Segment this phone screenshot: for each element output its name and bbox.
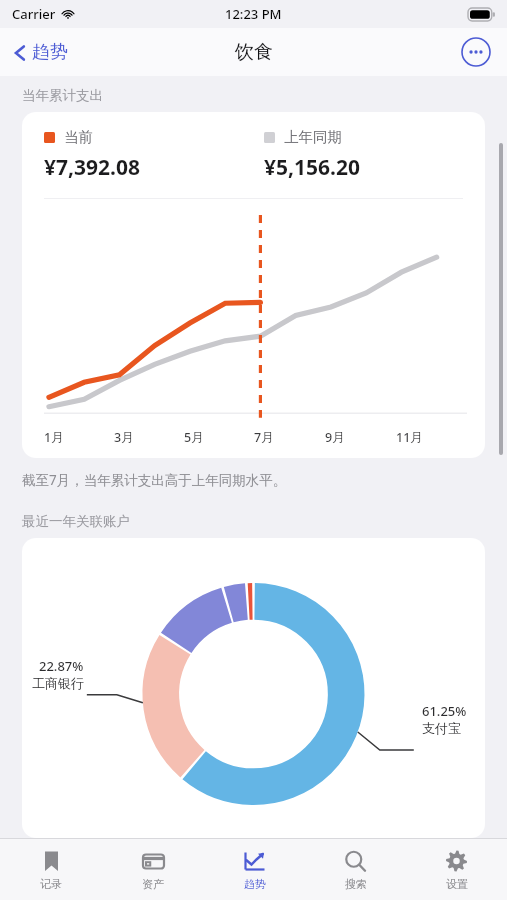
button[interactable]: 趋势 [10,37,72,68]
staticText: 当前 [64,128,93,146]
staticText: Carrier [12,5,56,23]
staticText: ¥7,392.08 [44,153,140,182]
staticText: 趋势 [244,877,266,891]
staticText: ¥5,156.20 [264,153,360,182]
staticText: 5月 [184,429,204,446]
staticText: 最近一年关联账户 [22,513,130,530]
staticText: 当年累计支出 [22,87,103,104]
staticText: 截至7月，当年累计支出高于上年同期水平。 [22,471,287,489]
staticText: 3月 [114,429,134,446]
staticText: 61.25% [422,702,467,720]
staticText: 记录 [40,877,62,891]
staticText: 9月 [325,429,345,446]
staticText: 饮食 [235,40,273,64]
staticText: 12:23 PM [225,5,282,23]
button[interactable]: 设置 [406,839,507,900]
staticText: 22.87% [39,657,84,675]
staticText: 搜索 [345,877,367,891]
staticText: 上年同期 [284,128,342,146]
button[interactable]: 资产 [102,839,204,900]
staticText: 7月 [254,429,274,446]
button[interactable]: 搜索 [305,839,406,900]
button[interactable]: 趋势 [204,839,305,900]
staticText: 11月 [396,429,423,446]
staticText: 趋势 [32,41,68,64]
staticText: 1月 [44,429,64,446]
button[interactable]: 22.87% [22,538,485,838]
button[interactable]: More options [461,37,491,67]
staticText: 工商银行 [32,675,84,691]
staticText: 设置 [446,877,468,891]
staticText: 支付宝 [422,720,461,736]
button[interactable]: 当前 [22,112,485,458]
staticText: 资产 [142,877,164,891]
button[interactable]: 记录 [0,839,102,900]
